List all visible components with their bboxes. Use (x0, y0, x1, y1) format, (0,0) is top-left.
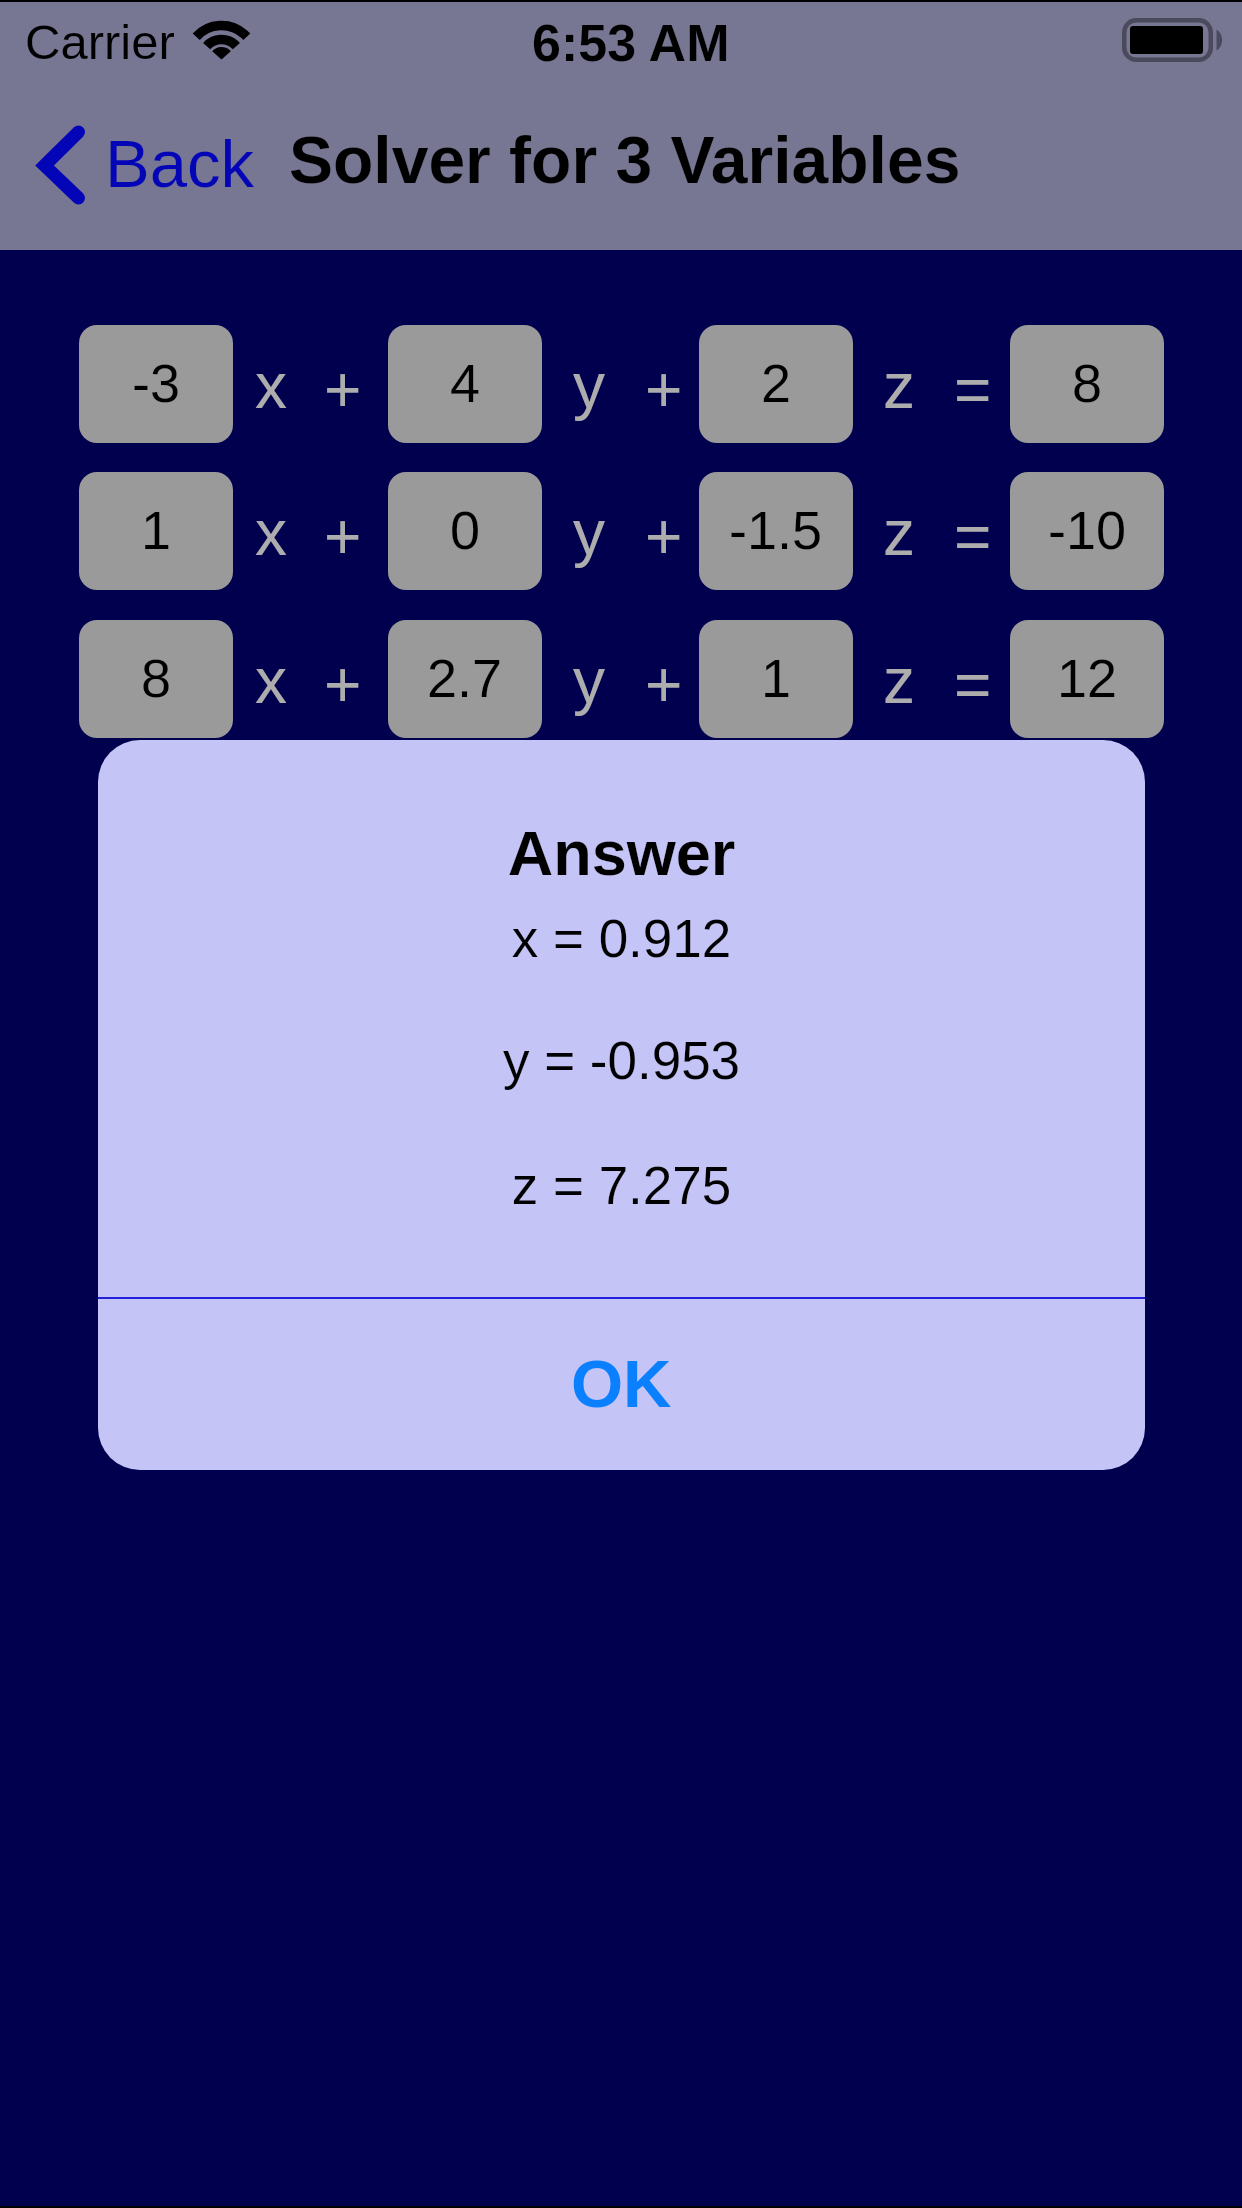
staticText: 12 (1057, 648, 1118, 708)
staticText: x (255, 350, 287, 422)
staticText: = (954, 354, 992, 426)
staticText: x (255, 645, 287, 717)
staticText: 2 (761, 353, 792, 413)
staticText: + (645, 354, 683, 426)
staticText: 1 (761, 648, 792, 708)
staticText: Carrier (25, 15, 175, 70)
staticText: = (954, 649, 992, 721)
staticText: -3 (132, 353, 181, 413)
button[interactable]: 2 (699, 325, 853, 443)
staticText: -1.5 (729, 500, 823, 560)
button[interactable]: 4 (388, 325, 542, 443)
button[interactable]: -10 (1010, 472, 1164, 590)
staticText: Answer (98, 818, 1145, 888)
staticText: z = 7.275 (98, 1156, 1145, 1215)
staticText: + (645, 501, 683, 573)
staticText: 8 (1072, 353, 1103, 413)
button[interactable]: -3 (79, 325, 233, 443)
staticText: z (883, 350, 915, 422)
staticText: z (883, 645, 915, 717)
staticText: + (645, 649, 683, 721)
staticText: OK (571, 1346, 672, 1421)
staticText: 2.7 (427, 648, 503, 708)
staticText: x (255, 497, 287, 569)
staticText: Solver for 3 Variables (289, 123, 961, 197)
staticText: y (573, 350, 605, 422)
staticText: 0 (450, 500, 481, 560)
button[interactable]: 12 (1010, 620, 1164, 738)
other: Battery full (1122, 18, 1224, 63)
button[interactable]: -1.5 (699, 472, 853, 590)
button[interactable]: 0 (388, 472, 542, 590)
staticText: 4 (450, 353, 481, 413)
staticText: + (324, 649, 362, 721)
staticText: + (324, 354, 362, 426)
staticText: y (573, 645, 605, 717)
staticText: z (883, 497, 915, 569)
button[interactable]: 1 (79, 472, 233, 590)
button[interactable]: Back (12, 104, 274, 244)
staticText: 8 (141, 648, 172, 708)
staticText: Back (105, 126, 254, 201)
staticText: -10 (1048, 500, 1127, 560)
button[interactable]: OK (98, 1299, 1145, 1470)
staticText: + (324, 501, 362, 573)
staticText: x = 0.912 (98, 909, 1145, 968)
staticText: = (954, 501, 992, 573)
other: Back (33, 120, 93, 210)
button[interactable]: 1 (699, 620, 853, 738)
staticText: 1 (141, 500, 172, 560)
staticText: 6:53 AM (532, 14, 730, 72)
staticText: y (573, 497, 605, 569)
button[interactable]: 8 (79, 620, 233, 738)
staticText: y = -0.953 (98, 1031, 1145, 1090)
other: Wi-Fi signal (194, 22, 249, 60)
button[interactable]: 8 (1010, 325, 1164, 443)
button[interactable]: 2.7 (388, 620, 542, 738)
